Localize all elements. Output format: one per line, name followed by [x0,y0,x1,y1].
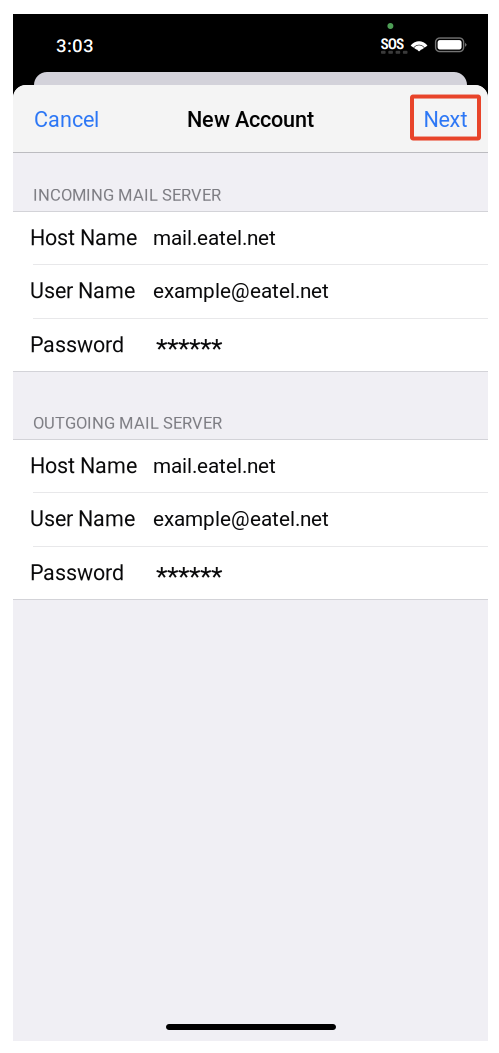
staticText: Password [30,332,124,358]
staticText: New Account [187,107,314,132]
staticText: Password [30,560,124,586]
staticText: Next [423,107,467,132]
button[interactable]: Cancel [13,98,124,140]
staticText: SOS [380,35,404,53]
staticText: User Name [30,278,135,304]
staticText: Host Name [30,225,137,251]
staticText: example@eatel.net [153,279,329,303]
staticText: mail.eatel.net [153,454,276,478]
staticText: ****** [156,332,222,364]
button[interactable]: Next [412,96,479,138]
staticText: Cancel [34,107,99,132]
staticText: INCOMING MAIL SERVER [33,185,221,205]
staticText: ****** [156,560,222,592]
staticText: User Name [30,506,135,532]
staticText: mail.eatel.net [153,226,276,250]
staticText: Host Name [30,453,137,479]
staticText: 3:03 [56,35,94,57]
staticText: example@eatel.net [153,507,329,531]
staticText: OUTGOING MAIL SERVER [33,413,222,433]
